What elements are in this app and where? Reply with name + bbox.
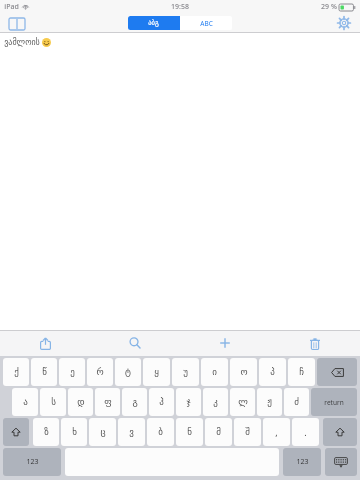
button[interactable]: Library	[5, 15, 29, 32]
staticText: 123	[296, 457, 309, 467]
staticText: ვ	[129, 427, 134, 437]
staticText: ჯ	[186, 397, 191, 407]
staticText: წ	[42, 367, 47, 377]
staticText: ძ	[294, 397, 299, 407]
button[interactable]: რ	[87, 358, 113, 386]
staticText: ტ	[125, 367, 131, 377]
button[interactable]: ჟ	[257, 388, 282, 416]
button[interactable]: ო	[230, 358, 257, 386]
button[interactable]: ი	[201, 358, 228, 386]
button[interactable]: Backspace	[317, 358, 357, 386]
staticText: ჟ	[267, 397, 272, 407]
staticText: 19:58	[171, 2, 189, 12]
button[interactable]: ბ	[147, 418, 174, 446]
staticText: ე	[70, 367, 75, 377]
button[interactable]: პ	[259, 358, 286, 386]
button[interactable]: ც	[89, 418, 116, 446]
staticText: ა	[23, 397, 28, 407]
staticText: ბ	[158, 427, 163, 437]
button[interactable]: უ	[172, 358, 199, 386]
staticText: პ	[270, 367, 275, 377]
button[interactable]: return	[311, 388, 357, 416]
button[interactable]: ტ	[115, 358, 141, 386]
button[interactable]: Delete	[270, 330, 360, 356]
button[interactable]: ყ	[143, 358, 170, 386]
button[interactable]: Share	[0, 330, 90, 356]
staticText: ფ	[104, 397, 112, 407]
button[interactable]: წ	[31, 358, 57, 386]
button[interactable]: 123	[3, 448, 61, 476]
staticText: ,	[275, 426, 278, 438]
staticText: iPad	[4, 2, 19, 12]
staticText: უ	[183, 367, 188, 377]
staticText: ჰ	[159, 397, 164, 407]
staticText: ვამლოის	[4, 38, 40, 47]
staticText: დ	[77, 397, 85, 407]
staticText: ხ	[72, 427, 77, 437]
button[interactable]: Search	[90, 330, 180, 356]
button[interactable]: გ	[122, 388, 147, 416]
button[interactable]: ,	[263, 418, 290, 446]
staticText: გ	[132, 397, 138, 407]
staticText: ქ	[14, 367, 19, 377]
staticText: ს	[51, 397, 56, 407]
staticText: ლ	[238, 397, 248, 407]
button[interactable]: ჩ	[288, 358, 315, 386]
button[interactable]: Shift	[323, 418, 357, 446]
button[interactable]: Shift	[3, 418, 29, 446]
staticText: ც	[100, 427, 106, 437]
staticText: return	[324, 398, 344, 407]
staticText: ი	[212, 367, 217, 377]
button[interactable]: ქ	[3, 358, 29, 386]
button[interactable]: ა	[12, 388, 38, 416]
button[interactable]: ე	[59, 358, 85, 386]
button[interactable]: ზ	[33, 418, 59, 446]
button[interactable]: დ	[68, 388, 93, 416]
button[interactable]: Settings	[334, 13, 354, 33]
button[interactable]: ჰ	[149, 388, 174, 416]
button[interactable]: ხ	[61, 418, 87, 446]
staticText: 29 %	[321, 2, 337, 12]
button[interactable]: ნ	[176, 418, 203, 446]
button[interactable]: Add	[180, 330, 270, 356]
button[interactable]: ლ	[230, 388, 255, 416]
staticText: მ	[216, 427, 221, 437]
button[interactable]: .	[292, 418, 319, 446]
staticText: შ	[245, 427, 250, 437]
staticText: ნ	[187, 427, 192, 437]
button[interactable]: ჯ	[176, 388, 201, 416]
staticText: ო	[240, 367, 248, 377]
staticText: 123	[26, 457, 39, 467]
staticText: ABC	[200, 19, 213, 28]
button[interactable]: მ	[205, 418, 232, 446]
button[interactable]: ვ	[118, 418, 145, 446]
button[interactable]: შ	[234, 418, 261, 446]
button[interactable]: ძ	[284, 388, 309, 416]
staticText: რ	[96, 367, 104, 377]
button[interactable]: აბგ	[128, 16, 179, 30]
button[interactable]: ს	[40, 388, 66, 416]
button[interactable]: კ	[203, 388, 228, 416]
staticText: ყ	[154, 367, 159, 377]
staticText: აბგ	[148, 19, 159, 27]
button[interactable]: 123	[283, 448, 321, 476]
button[interactable]: ფ	[95, 388, 120, 416]
staticText: .	[304, 426, 307, 438]
button[interactable]: Hide keyboard	[325, 448, 357, 476]
staticText: ზ	[44, 427, 49, 437]
staticText: კ	[213, 397, 218, 407]
button[interactable]: ABC	[180, 16, 232, 30]
staticText: ჩ	[299, 367, 304, 377]
